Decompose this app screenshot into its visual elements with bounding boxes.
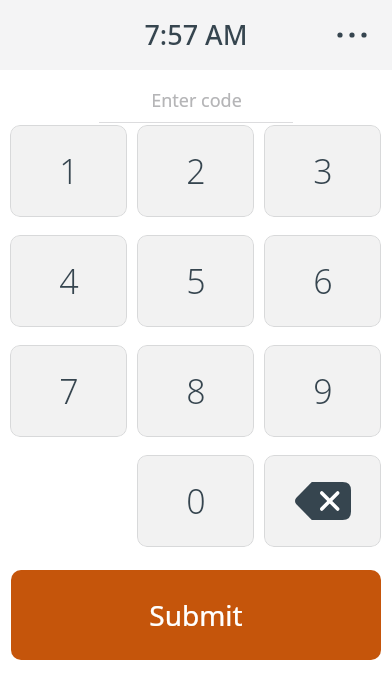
- button[interactable]: Submit: [11, 570, 381, 660]
- staticText: Enter code: [151, 88, 242, 113]
- staticText: 9: [313, 368, 333, 414]
- staticText: 4: [59, 258, 79, 304]
- staticText: Submit: [149, 596, 243, 634]
- button[interactable]: 4: [10, 235, 127, 327]
- button[interactable]: 3: [264, 125, 381, 217]
- button[interactable]: 5: [137, 235, 254, 327]
- button[interactable]: More options: [326, 9, 378, 61]
- staticText: 5: [186, 258, 206, 304]
- staticText: 3: [313, 148, 333, 194]
- staticText: 7: [59, 368, 79, 414]
- staticText: 0: [186, 478, 206, 524]
- staticText: 1: [59, 148, 79, 194]
- button[interactable]: 8: [137, 345, 254, 437]
- button[interactable]: 1: [10, 125, 127, 217]
- staticText: 7:57 AM: [144, 16, 248, 53]
- staticText: 8: [186, 368, 206, 414]
- button[interactable]: 2: [137, 125, 254, 217]
- button[interactable]: 6: [264, 235, 381, 327]
- staticText: 2: [186, 148, 206, 194]
- button[interactable]: 0: [137, 455, 254, 547]
- button[interactable]: Enter code: [99, 70, 293, 123]
- button[interactable]: 9: [264, 345, 381, 437]
- button[interactable]: 7: [10, 345, 127, 437]
- button[interactable]: Backspace: [264, 455, 381, 547]
- staticText: 6: [313, 258, 333, 304]
